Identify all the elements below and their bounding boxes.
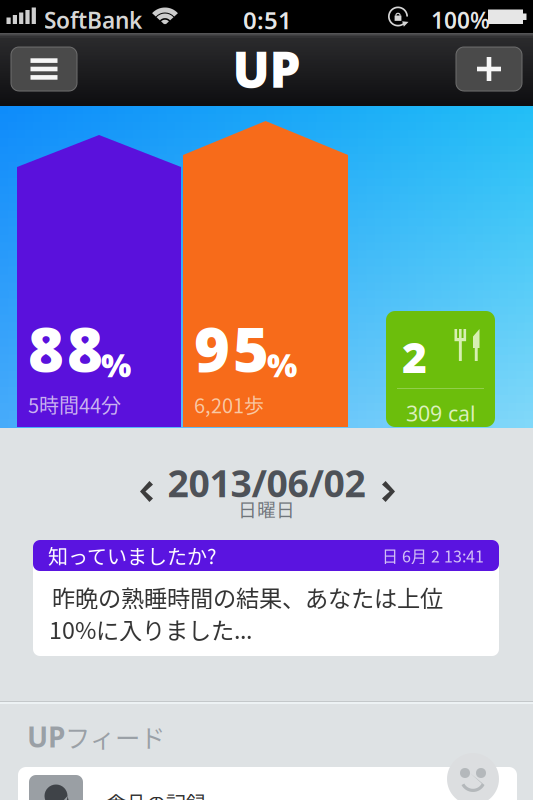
button[interactable]: Next day: [368, 467, 409, 516]
staticText: UP: [232, 36, 300, 101]
staticText: 昨晩の熟睡時間の結果、あなたは上位: [52, 580, 443, 614]
staticText: %: [101, 343, 131, 386]
staticText: 日曜日: [238, 495, 295, 522]
button[interactable]: 食品の記録: [18, 767, 517, 800]
staticText: 6,201歩: [194, 390, 264, 419]
staticText: 10%に入りました...: [49, 612, 252, 646]
button[interactable]: Previous day: [126, 467, 167, 516]
staticText: SoftBank: [44, 5, 142, 35]
staticText: 0:51: [243, 4, 292, 36]
staticText: 95: [194, 308, 269, 389]
button[interactable]: Add: [456, 47, 522, 91]
staticText: %: [267, 343, 297, 386]
staticText: 2013/06/02: [167, 458, 365, 508]
staticText: フィード: [65, 718, 165, 755]
staticText: UP: [27, 718, 65, 755]
button[interactable]: Menu: [11, 47, 77, 91]
staticText: 日 6月 2 13:41: [382, 544, 484, 567]
staticText: 88: [28, 308, 103, 389]
staticText: 食品の記録: [106, 788, 206, 800]
staticText: 309 cal: [406, 399, 476, 427]
staticText: 5時間44分: [28, 390, 121, 419]
staticText: 100%: [431, 5, 490, 35]
button[interactable]: 知っていましたか?: [33, 540, 499, 656]
staticText: 2: [402, 328, 427, 385]
staticText: 知っていましたか?: [48, 541, 216, 570]
